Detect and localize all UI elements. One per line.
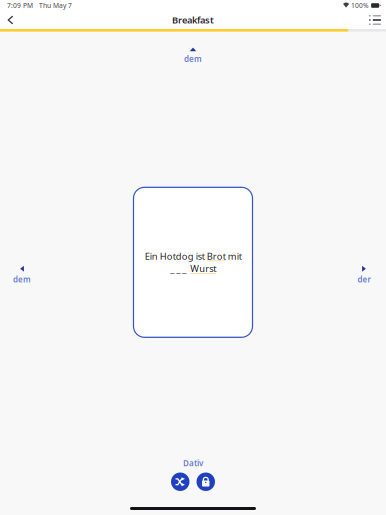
button[interactable]: Back <box>1 11 20 29</box>
button[interactable]: Lock <box>196 472 215 491</box>
staticText: Breakfast <box>172 14 214 26</box>
staticText: Ein Hotdog ist Brot mit _ _ _ Wurst <box>144 250 241 275</box>
staticText: 100% <box>351 1 369 10</box>
button[interactable]: More <box>368 11 384 29</box>
button[interactable]: dem <box>174 45 212 67</box>
button[interactable]: dem <box>6 263 38 288</box>
button[interactable]: Shuffle <box>171 472 189 491</box>
staticText: dem <box>13 274 31 285</box>
button[interactable]: der <box>348 263 380 288</box>
staticText: der <box>357 274 370 285</box>
staticText: dem <box>184 54 202 64</box>
button[interactable]: Ein Hotdog ist Brot mit _ _ _ Wurst <box>133 187 252 337</box>
staticText: Dativ <box>183 458 203 468</box>
staticText: Thu May 7 <box>39 1 72 10</box>
staticText: 7:09 PM <box>7 1 33 10</box>
